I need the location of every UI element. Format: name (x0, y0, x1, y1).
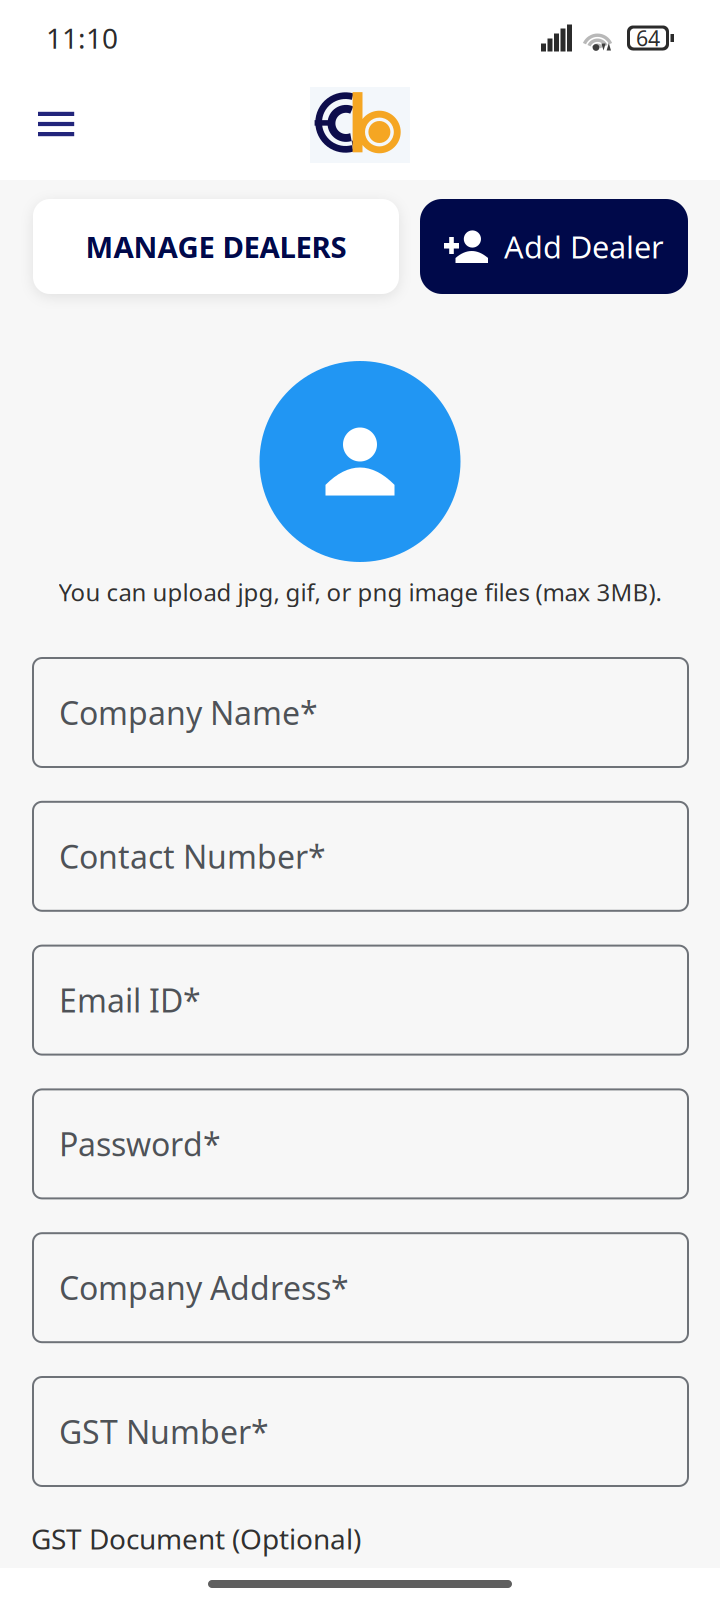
staticText: Add Dealer (504, 226, 664, 267)
staticText: You can upload jpg, gif, or png image fi… (58, 576, 661, 608)
staticText: 11:10 (46, 19, 118, 57)
button[interactable]: GST Number* (33, 1377, 688, 1486)
staticText: Company Name* (59, 691, 318, 734)
button[interactable]: MANAGE DEALERS (33, 199, 399, 294)
staticText: Company Address* (59, 1266, 349, 1309)
staticText: Password* (59, 1123, 221, 1165)
staticText: GST Document (Optional) (31, 1520, 361, 1557)
button[interactable]: Add Dealer (420, 199, 688, 294)
staticText: Contact Number* (59, 835, 326, 878)
button[interactable]: Company Address* (33, 1233, 688, 1342)
staticText: 64 (636, 24, 660, 52)
button[interactable]: Email ID* (33, 946, 688, 1055)
button[interactable]: Upload photo (259, 361, 460, 562)
button[interactable]: Contact Number* (33, 802, 688, 911)
button[interactable]: Company Name* (33, 658, 688, 767)
staticText: Email ID* (59, 979, 201, 1021)
staticText: MANAGE DEALERS (85, 227, 346, 266)
button[interactable]: Menu (0, 96, 102, 160)
staticText: GST Number* (59, 1410, 269, 1453)
button[interactable]: Password* (33, 1089, 688, 1198)
